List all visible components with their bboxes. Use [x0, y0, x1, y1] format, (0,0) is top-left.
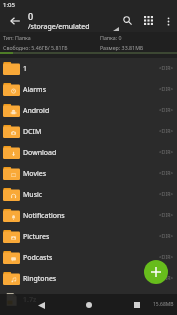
- staticText: Android: [23, 106, 50, 116]
- button[interactable]: Download: [0, 142, 177, 163]
- button[interactable]: Search: [117, 10, 138, 31]
- staticText: <DIR>: [159, 149, 174, 156]
- staticText: Тип: Папка: [3, 34, 31, 41]
- staticText: 1: [23, 64, 28, 74]
- button[interactable]: Home: [80, 296, 98, 314]
- button[interactable]: 1.7z: [0, 289, 177, 310]
- staticText: Notifications: [23, 211, 65, 221]
- staticText: <DIR>: [159, 212, 174, 219]
- staticText: Папка: 0: [100, 34, 122, 41]
- staticText: <DIR>: [159, 254, 174, 261]
- staticText: <DIR>: [159, 233, 174, 240]
- button[interactable]: Add: [144, 260, 168, 284]
- staticText: 1:05: [3, 1, 15, 9]
- staticText: Movies: [23, 169, 47, 179]
- staticText: <DIR>: [159, 86, 174, 93]
- staticText: Podcasts: [23, 253, 53, 263]
- button[interactable]: Back: [32, 296, 50, 314]
- staticText: /storage/emulated: [28, 22, 90, 32]
- button[interactable]: More options: [159, 12, 177, 30]
- button[interactable]: DCIM: [0, 121, 177, 142]
- button[interactable]: Notifications: [0, 205, 177, 226]
- staticText: Свободно: 5.46ГБ/ 5.81ГБ: [3, 44, 68, 51]
- staticText: <DIR>: [159, 65, 174, 72]
- button[interactable]: Movies: [0, 163, 177, 184]
- button[interactable]: Ringtones: [0, 268, 177, 289]
- staticText: 0: [28, 10, 34, 22]
- staticText: Ringtones: [23, 274, 57, 284]
- staticText: <DIR>: [159, 170, 174, 177]
- staticText: <DIR>: [159, 107, 174, 114]
- staticText: <DIR>: [159, 128, 174, 135]
- button[interactable]: Android: [0, 100, 177, 121]
- staticText: DCIM: [23, 127, 42, 137]
- button[interactable]: Alarms: [0, 79, 177, 100]
- staticText: Pictures: [23, 232, 50, 242]
- button[interactable]: Recents: [128, 296, 146, 314]
- staticText: 1.7z: [23, 295, 37, 305]
- button[interactable]: 1: [0, 58, 177, 79]
- button[interactable]: Pictures: [0, 226, 177, 247]
- button[interactable]: Back: [8, 14, 22, 28]
- staticText: Download: [23, 148, 57, 158]
- button[interactable]: Music: [0, 184, 177, 205]
- staticText: Music: [23, 190, 43, 200]
- staticText: <DIR>: [159, 275, 174, 282]
- staticText: Размер: 33.81МБ: [100, 44, 144, 51]
- button[interactable]: Podcasts: [0, 247, 177, 268]
- staticText: <DIR>: [159, 191, 174, 198]
- staticText: Alarms: [23, 85, 46, 95]
- button[interactable]: Grid view: [138, 10, 159, 31]
- staticText: 15.68MB: [153, 301, 174, 308]
